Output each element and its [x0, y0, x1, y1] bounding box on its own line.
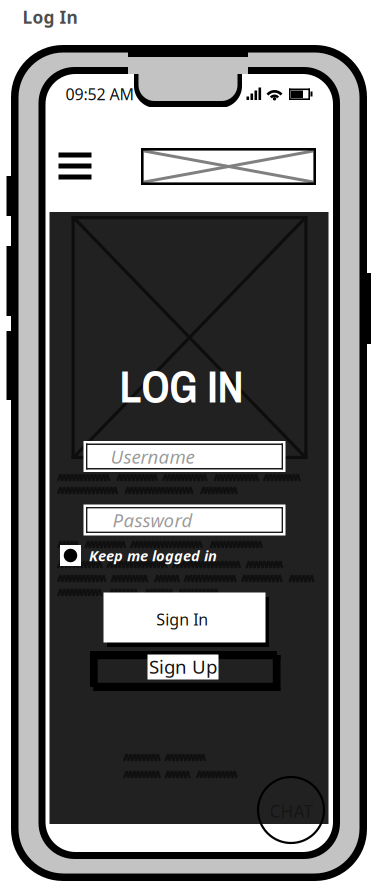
staticText: Username — [110, 444, 194, 469]
button[interactable]: Menu — [0, 0, 378, 889]
button[interactable]: Keep me logged in — [81, 545, 203, 566]
staticText: Sign In — [156, 608, 208, 630]
button[interactable]: Sign In — [103, 592, 269, 647]
staticText: Keep me logged in — [89, 545, 217, 565]
staticText: Password — [112, 507, 192, 533]
staticText: CHAT — [269, 799, 313, 823]
staticText: Sign Up — [149, 654, 217, 679]
button[interactable]: Chat — [257, 776, 325, 844]
staticText: 09:52 AM — [65, 83, 134, 105]
staticText: LOG IN — [119, 357, 243, 416]
button[interactable]: Sign Up — [90, 651, 280, 691]
button[interactable]: Password — [83, 504, 285, 535]
button[interactable]: Username — [83, 441, 285, 472]
staticText: Log In — [22, 5, 77, 28]
